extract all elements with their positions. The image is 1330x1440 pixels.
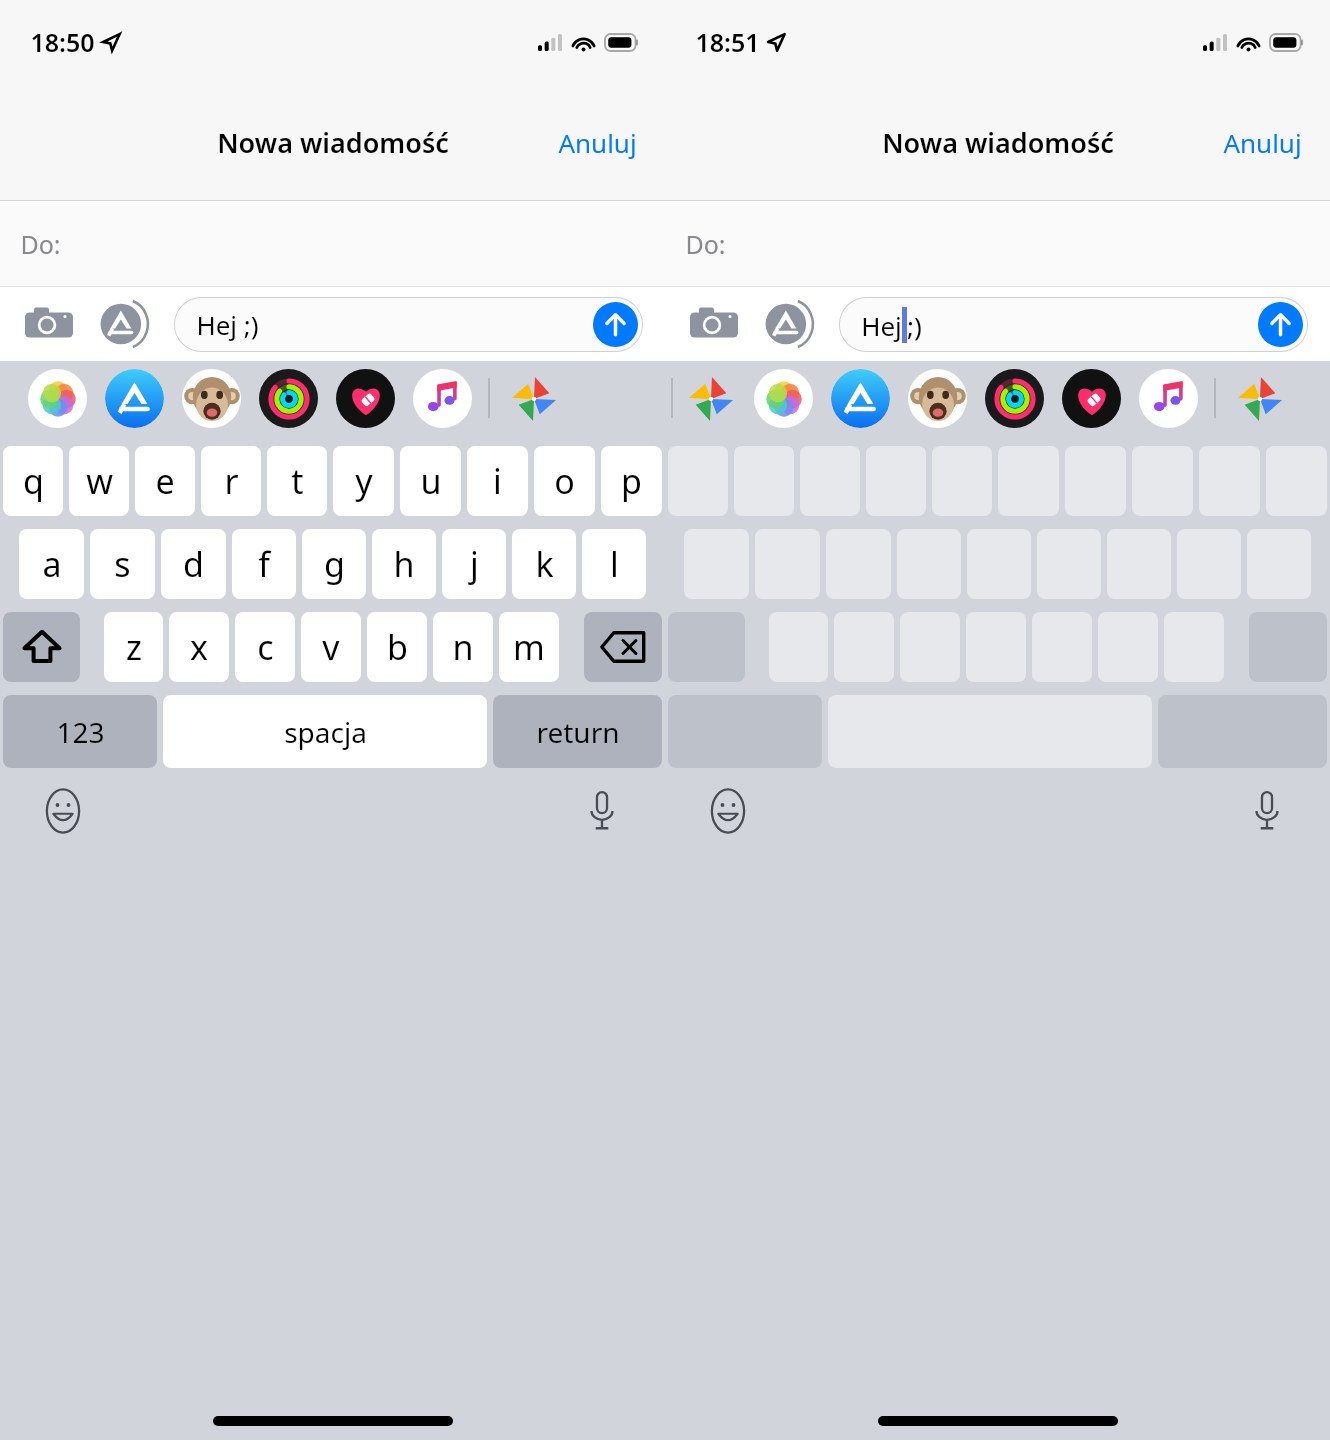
button[interactable]: App bbox=[182, 369, 241, 428]
button[interactable]: z bbox=[104, 612, 163, 682]
button[interactable]: Send bbox=[1258, 302, 1303, 347]
button[interactable]: c bbox=[235, 612, 295, 682]
button[interactable]: App bbox=[754, 369, 813, 428]
button[interactable]: j bbox=[442, 529, 506, 599]
button[interactable]: k bbox=[512, 529, 576, 599]
button[interactable]: App bbox=[681, 369, 740, 428]
button[interactable]: t bbox=[267, 446, 327, 516]
staticText: a bbox=[42, 541, 62, 587]
button[interactable]: n bbox=[433, 612, 493, 682]
button[interactable]: App Store bbox=[763, 297, 817, 351]
button[interactable]: App bbox=[1062, 369, 1121, 428]
staticText: g bbox=[324, 541, 345, 587]
button[interactable]: r bbox=[201, 446, 261, 516]
staticText: c bbox=[257, 624, 274, 670]
button[interactable]: g bbox=[302, 529, 366, 599]
button[interactable]: l bbox=[582, 529, 646, 599]
button[interactable]: Backspace bbox=[584, 612, 662, 682]
button[interactable]: spacja bbox=[163, 695, 487, 768]
button[interactable]: Dictation bbox=[1238, 782, 1296, 840]
button[interactable]: a bbox=[19, 529, 84, 599]
button[interactable]: e bbox=[135, 446, 195, 516]
button[interactable]: h bbox=[372, 529, 436, 599]
button[interactable]: App bbox=[1139, 369, 1198, 428]
button[interactable]: Camera bbox=[687, 297, 741, 351]
staticText: q bbox=[23, 458, 44, 504]
button[interactable]: App bbox=[831, 369, 890, 428]
button[interactable]: App bbox=[336, 369, 395, 428]
button[interactable]: x bbox=[169, 612, 229, 682]
button[interactable]: App bbox=[413, 369, 472, 428]
button[interactable]: d bbox=[161, 529, 226, 599]
button[interactable]: App Store bbox=[98, 297, 152, 351]
button[interactable]: App bbox=[28, 369, 87, 428]
button[interactable]: Shift bbox=[3, 612, 80, 682]
button[interactable]: Anuluj bbox=[544, 113, 651, 172]
button[interactable]: i bbox=[467, 446, 528, 516]
button[interactable]: Do: bbox=[0, 201, 665, 287]
button[interactable]: Emoji bbox=[34, 782, 92, 840]
button[interactable]: App bbox=[908, 369, 967, 428]
button[interactable]: b bbox=[367, 612, 427, 682]
button[interactable]: Hej ;) bbox=[174, 297, 643, 352]
button[interactable]: App bbox=[1230, 369, 1289, 428]
button[interactable]: v bbox=[301, 612, 361, 682]
button[interactable]: Emoji bbox=[699, 782, 757, 840]
button[interactable]: y bbox=[333, 446, 394, 516]
staticText: j bbox=[470, 541, 479, 587]
button[interactable]: Anuluj bbox=[1209, 113, 1316, 172]
button[interactable]: Hej bbox=[839, 297, 1308, 352]
button[interactable]: p bbox=[601, 446, 662, 516]
button[interactable]: App bbox=[259, 369, 318, 428]
button[interactable]: Do: bbox=[665, 201, 1330, 287]
button[interactable]: s bbox=[90, 529, 155, 599]
button[interactable]: q bbox=[3, 446, 63, 516]
button[interactable]: m bbox=[499, 612, 559, 682]
button[interactable]: o bbox=[534, 446, 595, 516]
button[interactable]: return bbox=[493, 695, 662, 768]
button[interactable]: App bbox=[985, 369, 1044, 428]
button[interactable]: f bbox=[232, 529, 296, 599]
button[interactable]: App bbox=[105, 369, 164, 428]
button[interactable]: w bbox=[69, 446, 129, 516]
staticText: Nowa wiadomość bbox=[217, 124, 449, 161]
staticText: spacja bbox=[284, 713, 367, 751]
button[interactable]: Dictation bbox=[573, 782, 631, 840]
button[interactable]: u bbox=[400, 446, 461, 516]
button[interactable]: Camera bbox=[22, 297, 76, 351]
button[interactable]: 123 bbox=[3, 695, 157, 768]
button[interactable]: App bbox=[504, 369, 563, 428]
button[interactable]: Send bbox=[593, 302, 638, 347]
